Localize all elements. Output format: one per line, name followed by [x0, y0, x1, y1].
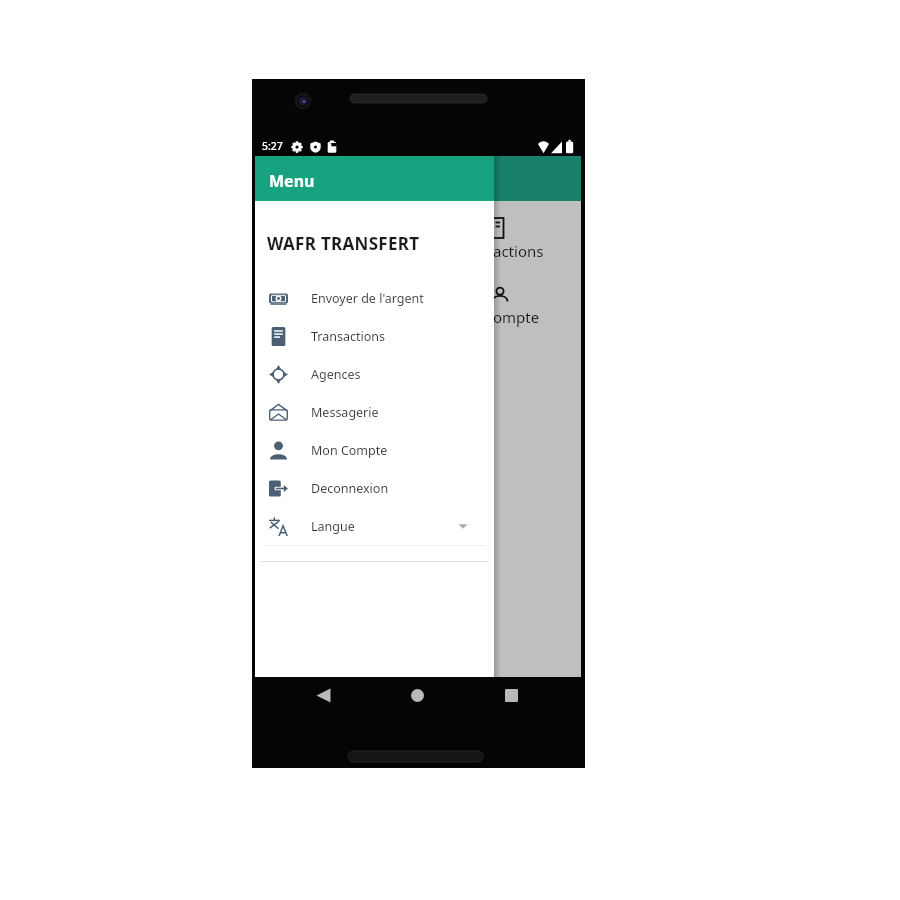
- button[interactable]: Langue: [255, 507, 494, 545]
- button[interactable]: Transactions: [255, 317, 494, 355]
- button[interactable]: Messagerie: [255, 393, 494, 431]
- button[interactable]: Home: [401, 679, 433, 711]
- button[interactable]: Agences: [255, 355, 494, 393]
- button[interactable]: Mon Compte: [255, 431, 494, 469]
- button[interactable]: Back: [307, 679, 339, 711]
- staticText: WAFR TRANSFERT: [267, 232, 420, 255]
- staticText: 5:27: [262, 139, 283, 153]
- staticText: Deconnexion: [311, 480, 389, 497]
- staticText: ompte: [493, 307, 540, 327]
- staticText: Agences: [311, 366, 361, 383]
- staticText: Mon Compte: [311, 442, 388, 459]
- staticText: Transactions: [311, 328, 385, 345]
- staticText: Messagerie: [311, 404, 379, 421]
- staticText: Menu: [269, 170, 315, 192]
- button[interactable]: Recent apps: [495, 679, 527, 711]
- staticText: Langue: [311, 518, 355, 535]
- button[interactable]: actions: [451, 209, 547, 269]
- button[interactable]: Envoyer de l'argent: [255, 279, 494, 317]
- staticText: actions: [493, 241, 544, 261]
- staticText: Envoyer de l'argent: [311, 290, 424, 307]
- button[interactable]: Menu: [255, 156, 494, 201]
- button[interactable]: Deconnexion: [255, 469, 494, 507]
- button[interactable]: ompte: [451, 279, 547, 339]
